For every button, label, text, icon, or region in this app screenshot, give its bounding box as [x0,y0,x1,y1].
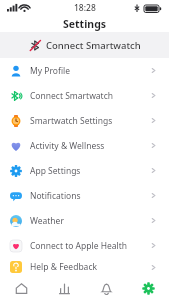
button[interactable]: Connect Smartwatch [0,32,169,58]
staticText: Help & Feedback [30,261,97,273]
button[interactable]: Connect to Apple Health [0,233,169,258]
staticText: Notifications [30,190,81,202]
staticText: App Settings [30,165,81,177]
staticText: Connect Smartwatch [30,90,113,102]
button[interactable]: Home [0,276,43,300]
staticText: 18:28 [74,2,96,14]
button[interactable]: Activity & Wellness [0,133,169,158]
button[interactable]: Settings [127,276,169,300]
button[interactable]: Weather [0,208,169,233]
button[interactable]: Help & Feedback [0,258,169,276]
staticText: My Profile [30,65,70,77]
button[interactable]: Notifications [85,276,127,300]
button[interactable]: Statistics [43,276,85,300]
staticText: Activity & Wellness [30,140,105,152]
staticText: Connect to Apple Health [30,240,128,252]
button[interactable]: Connect Smartwatch [0,83,169,108]
button[interactable]: App Settings [0,158,169,183]
staticText: Weather [30,215,64,227]
staticText: Smartwatch Settings [30,115,113,127]
staticText: Settings [63,17,107,31]
staticText: Connect Smartwatch [46,39,141,52]
button[interactable]: My Profile [0,58,169,83]
button[interactable]: Notifications [0,183,169,208]
button[interactable]: Smartwatch Settings [0,108,169,133]
